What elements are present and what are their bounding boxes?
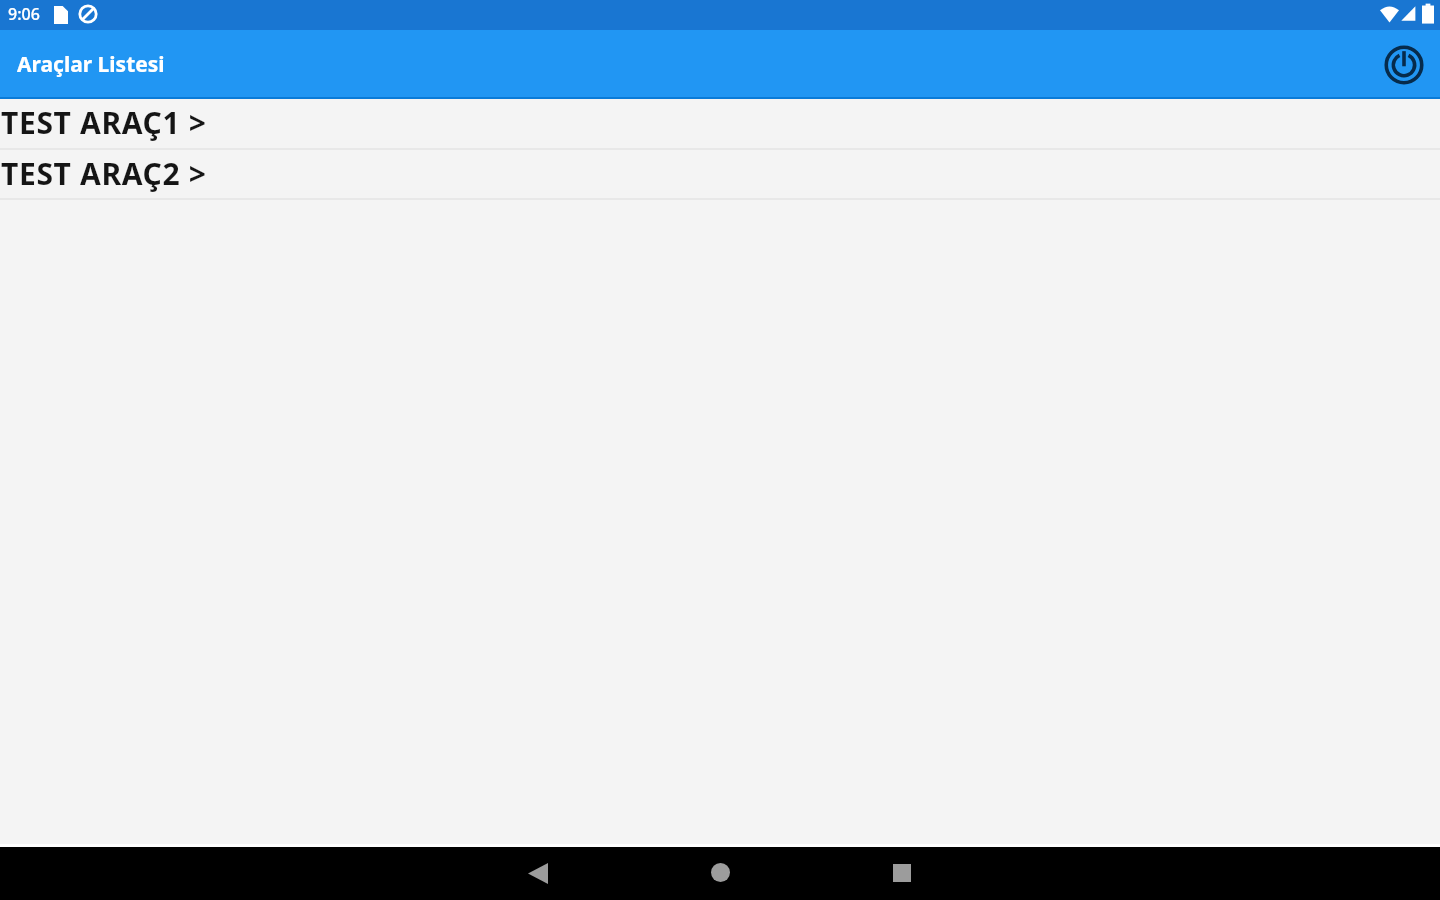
button[interactable]: Back xyxy=(514,849,562,897)
button[interactable]: Power xyxy=(1379,40,1429,90)
staticText: 9:06 xyxy=(8,3,40,25)
staticText: TEST ARAÇ1 > xyxy=(1,102,207,143)
button[interactable]: Home xyxy=(696,848,744,896)
button[interactable]: TEST ARAÇ1 > xyxy=(0,99,1440,150)
button[interactable]: TEST ARAÇ2 > xyxy=(0,150,1440,200)
staticText: TEST ARAÇ2 > xyxy=(1,153,207,194)
button[interactable]: Recent apps xyxy=(878,849,926,897)
staticText: Araçlar Listesi xyxy=(17,50,165,79)
